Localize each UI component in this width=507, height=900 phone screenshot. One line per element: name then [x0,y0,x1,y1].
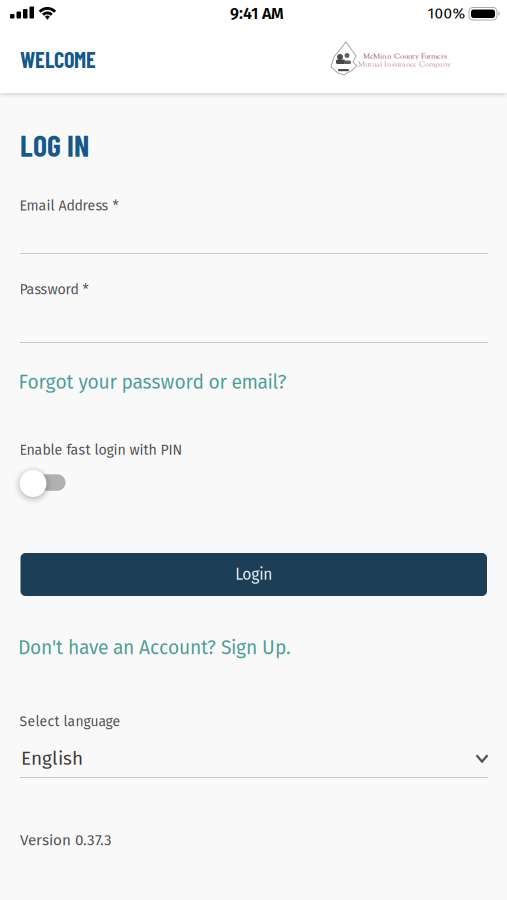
staticText: WELCOME [20,46,96,72]
staticText: Forgot your password or email? [18,371,286,394]
button[interactable]: Enable fast login with PIN [19,470,65,498]
staticText: Email Address * [19,197,118,214]
button[interactable]: Don't have an Account? Sign Up. [18,636,291,659]
button[interactable]: Forgot your password or email? [18,371,286,394]
staticText: English [21,747,83,770]
staticText: Version 0.37.3 [20,831,112,849]
staticText: McMinn County Farmers [363,51,447,62]
staticText: Mutual Insurance Company [358,59,451,70]
staticText: Login [235,565,272,584]
staticText: LOG IN [20,127,89,163]
button[interactable]: English [20,743,488,779]
staticText: Don't have an Account? Sign Up. [18,636,291,659]
staticText: Select language [19,713,120,730]
staticText: 9:41 AM [230,4,284,23]
button[interactable]: Login [20,553,487,596]
staticText: 100% [427,4,465,22]
staticText: Enable fast login with PIN [19,441,182,458]
staticText: Password * [19,281,88,298]
